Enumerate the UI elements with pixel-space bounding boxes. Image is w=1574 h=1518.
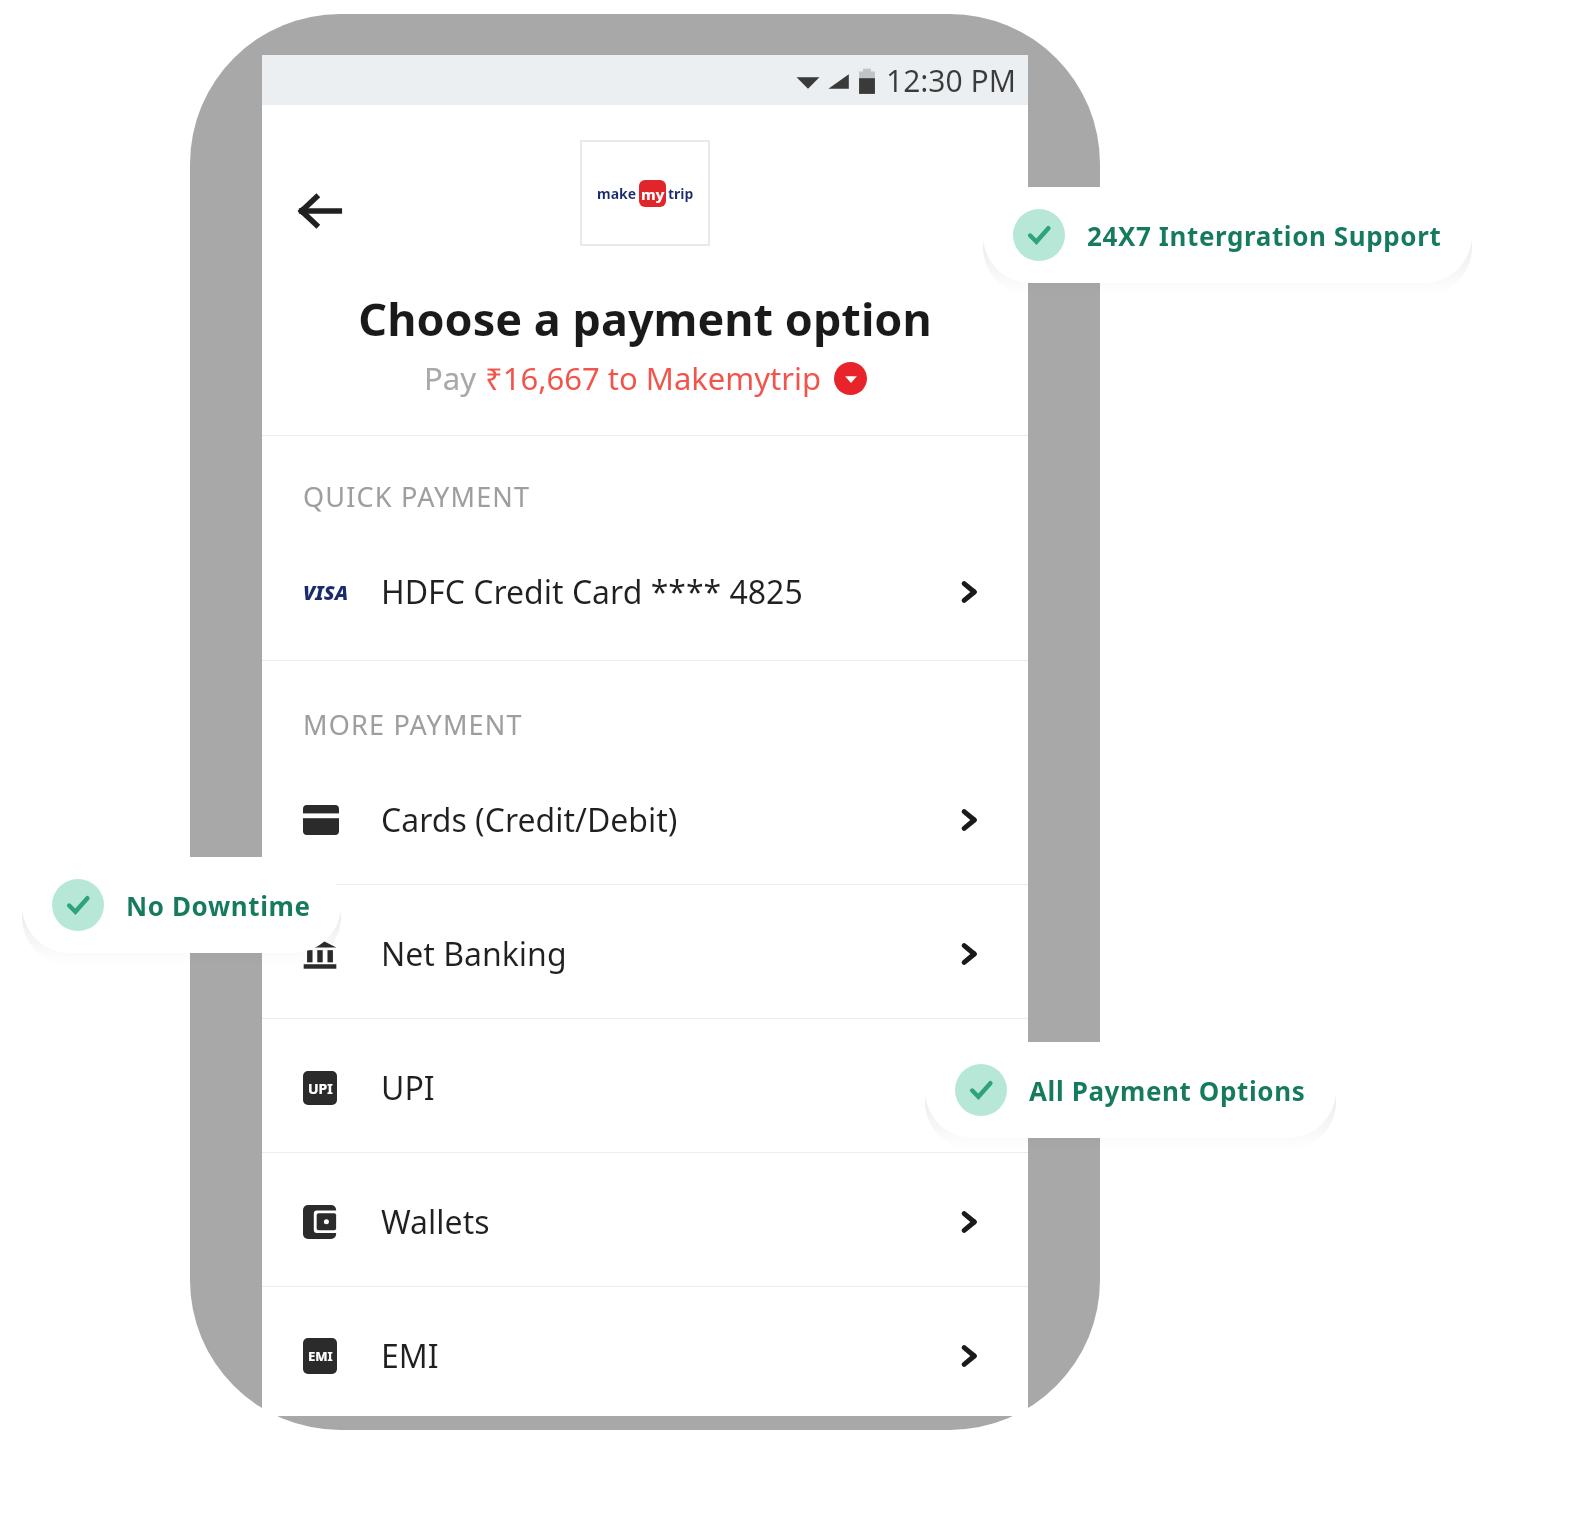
staticText: UPI <box>308 1079 333 1098</box>
button[interactable]: All Payment Options <box>925 1042 1336 1138</box>
staticText: EMI <box>308 1347 333 1365</box>
staticText: Choose a payment option <box>358 288 932 349</box>
staticText: QUICK PAYMENT <box>303 478 531 515</box>
button[interactable]: UPI <box>262 1059 1028 1117</box>
staticText: Net Banking <box>381 932 567 976</box>
staticText: Wallets <box>381 1200 490 1244</box>
staticText: 12:30 PM <box>886 60 1016 101</box>
staticText: UPI <box>381 1066 435 1110</box>
staticText: MORE PAYMENT <box>303 706 523 743</box>
staticText: Cards (Credit/Debit) <box>381 798 678 842</box>
staticText: trip <box>668 184 694 203</box>
staticText: 24X7 Intergration Support <box>1087 218 1442 253</box>
button[interactable]: Expand amount details <box>834 362 867 395</box>
staticText: VISA <box>303 579 349 606</box>
staticText: my <box>641 184 665 204</box>
staticText: HDFC Credit Card **** 4825 <box>381 570 803 614</box>
staticText: No Downtime <box>126 888 311 923</box>
staticText: make <box>597 184 637 203</box>
button[interactable]: Net Banking <box>262 925 1028 983</box>
button[interactable]: 24X7 Intergration Support <box>983 187 1472 283</box>
button[interactable]: Cards (Credit/Debit) <box>262 791 1028 849</box>
button[interactable]: VISA <box>262 563 1028 621</box>
staticText: EMI <box>381 1334 439 1378</box>
staticText: ₹16,667 to Makemytrip <box>485 357 822 399</box>
button[interactable]: No Downtime <box>22 857 341 953</box>
button[interactable]: Wallets <box>262 1193 1028 1251</box>
staticText: Pay <box>424 357 485 399</box>
staticText: All Payment Options <box>1029 1073 1306 1108</box>
button[interactable]: Back <box>286 177 354 245</box>
button[interactable]: EMI <box>262 1327 1028 1385</box>
